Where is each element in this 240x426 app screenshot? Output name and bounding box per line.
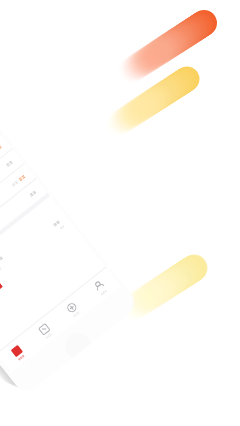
button[interactable] <box>0 164 36 266</box>
button[interactable]: Mine <box>79 268 121 308</box>
button[interactable] <box>0 196 85 327</box>
button[interactable]: Cart <box>51 289 94 330</box>
button[interactable]: Categories <box>24 311 66 351</box>
button[interactable] <box>0 179 48 281</box>
button[interactable]: Home <box>0 333 39 373</box>
button[interactable] <box>0 134 13 236</box>
button[interactable] <box>0 149 25 251</box>
button[interactable] <box>0 119 1 221</box>
